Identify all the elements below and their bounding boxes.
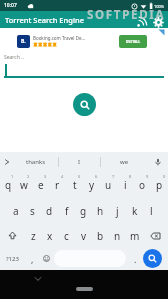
staticText: we xyxy=(120,158,129,166)
staticText: p xyxy=(156,178,163,192)
staticText: B. xyxy=(21,38,26,45)
button[interactable]: B. xyxy=(17,30,156,52)
button[interactable] xyxy=(143,249,162,268)
staticText: j xyxy=(116,204,119,218)
button[interactable]: w xyxy=(16,172,32,198)
button[interactable] xyxy=(152,16,164,28)
staticText: Booking.com Travel De... xyxy=(33,35,86,41)
button[interactable]: b xyxy=(92,224,109,247)
staticText: 10:07 xyxy=(4,2,17,9)
staticText: 8 xyxy=(129,174,132,179)
button[interactable]: I xyxy=(59,152,100,172)
staticText: 4 xyxy=(61,174,64,179)
staticText: a xyxy=(13,204,19,218)
staticText: 5 xyxy=(78,174,81,179)
button[interactable]: n xyxy=(109,224,126,247)
button[interactable]: ?123 xyxy=(0,247,25,270)
staticText: m xyxy=(130,229,140,243)
staticText: 6 xyxy=(95,174,98,179)
button[interactable] xyxy=(147,152,168,172)
staticText: c xyxy=(64,229,69,243)
button[interactable] xyxy=(135,16,147,28)
staticText: 1 xyxy=(11,174,14,179)
staticText: 3 xyxy=(44,174,47,179)
staticText: v xyxy=(81,229,87,243)
staticText: z xyxy=(31,229,36,243)
staticText: ?123 xyxy=(6,255,19,263)
button[interactable]: r xyxy=(49,172,66,198)
staticText: INSTALL xyxy=(126,39,141,44)
button[interactable]: j xyxy=(109,198,126,224)
staticText: 7 xyxy=(112,174,115,179)
staticText: o xyxy=(139,178,146,192)
button[interactable]: y xyxy=(83,172,100,198)
button[interactable]: m xyxy=(126,224,143,247)
button[interactable]: a xyxy=(8,198,24,224)
staticText: thanks xyxy=(26,158,46,166)
staticText: e xyxy=(38,178,44,192)
button[interactable]: s xyxy=(24,198,41,224)
staticText: k xyxy=(132,204,138,218)
button[interactable]: p xyxy=(151,172,168,198)
button[interactable]: t xyxy=(66,172,83,198)
button[interactable]: u xyxy=(100,172,117,198)
button[interactable]: l xyxy=(143,198,160,224)
staticText: g xyxy=(80,204,87,218)
staticText: f xyxy=(65,204,69,218)
button[interactable]: q xyxy=(0,172,16,198)
button[interactable] xyxy=(73,93,96,116)
staticText: t xyxy=(73,178,77,192)
button[interactable] xyxy=(76,287,93,291)
staticText: h xyxy=(97,204,104,218)
staticText: y xyxy=(89,178,95,192)
button[interactable]: we xyxy=(101,152,147,172)
staticText: Torrent Search Engine xyxy=(5,15,84,25)
staticText: x xyxy=(47,229,53,243)
staticText: l xyxy=(150,204,153,218)
button[interactable]: h xyxy=(92,198,109,224)
staticText: 2 xyxy=(27,174,30,179)
button[interactable]: . xyxy=(128,247,142,270)
staticText: w xyxy=(20,178,28,192)
staticText: b xyxy=(97,229,104,243)
button[interactable]: i xyxy=(117,172,134,198)
button[interactable]: INSTALL xyxy=(119,35,147,48)
button[interactable] xyxy=(39,247,53,270)
button[interactable]: v xyxy=(75,224,92,247)
button[interactable]: thanks xyxy=(14,152,58,172)
staticText: n xyxy=(114,229,121,243)
button[interactable]: x xyxy=(41,224,58,247)
staticText: q xyxy=(5,178,12,192)
button[interactable] xyxy=(0,152,14,172)
staticText: u xyxy=(105,178,112,192)
button[interactable]: k xyxy=(126,198,143,224)
staticText: Search .. xyxy=(4,54,24,61)
button[interactable]: e xyxy=(32,172,49,198)
button[interactable]: o xyxy=(134,172,151,198)
staticText: r xyxy=(55,178,60,192)
button[interactable]: Search .. xyxy=(4,52,164,78)
staticText: . xyxy=(134,253,137,265)
button[interactable] xyxy=(34,276,42,282)
button[interactable]: g xyxy=(75,198,92,224)
button[interactable]: d xyxy=(41,198,58,224)
staticText: 9 xyxy=(146,174,149,179)
staticText: SOFTPEDIA xyxy=(87,7,166,23)
staticText: I xyxy=(78,158,81,166)
staticText: i xyxy=(124,178,127,192)
button[interactable]: c xyxy=(58,224,75,247)
button[interactable] xyxy=(0,224,25,247)
staticText: 0 xyxy=(163,174,166,179)
button[interactable] xyxy=(143,224,168,247)
button[interactable]: z xyxy=(25,224,41,247)
staticText: , xyxy=(31,253,34,265)
button[interactable]: , xyxy=(25,247,39,270)
staticText: s xyxy=(30,204,35,218)
staticText: d xyxy=(46,204,53,218)
staticText: 100% xyxy=(154,4,165,9)
button[interactable]: f xyxy=(58,198,75,224)
